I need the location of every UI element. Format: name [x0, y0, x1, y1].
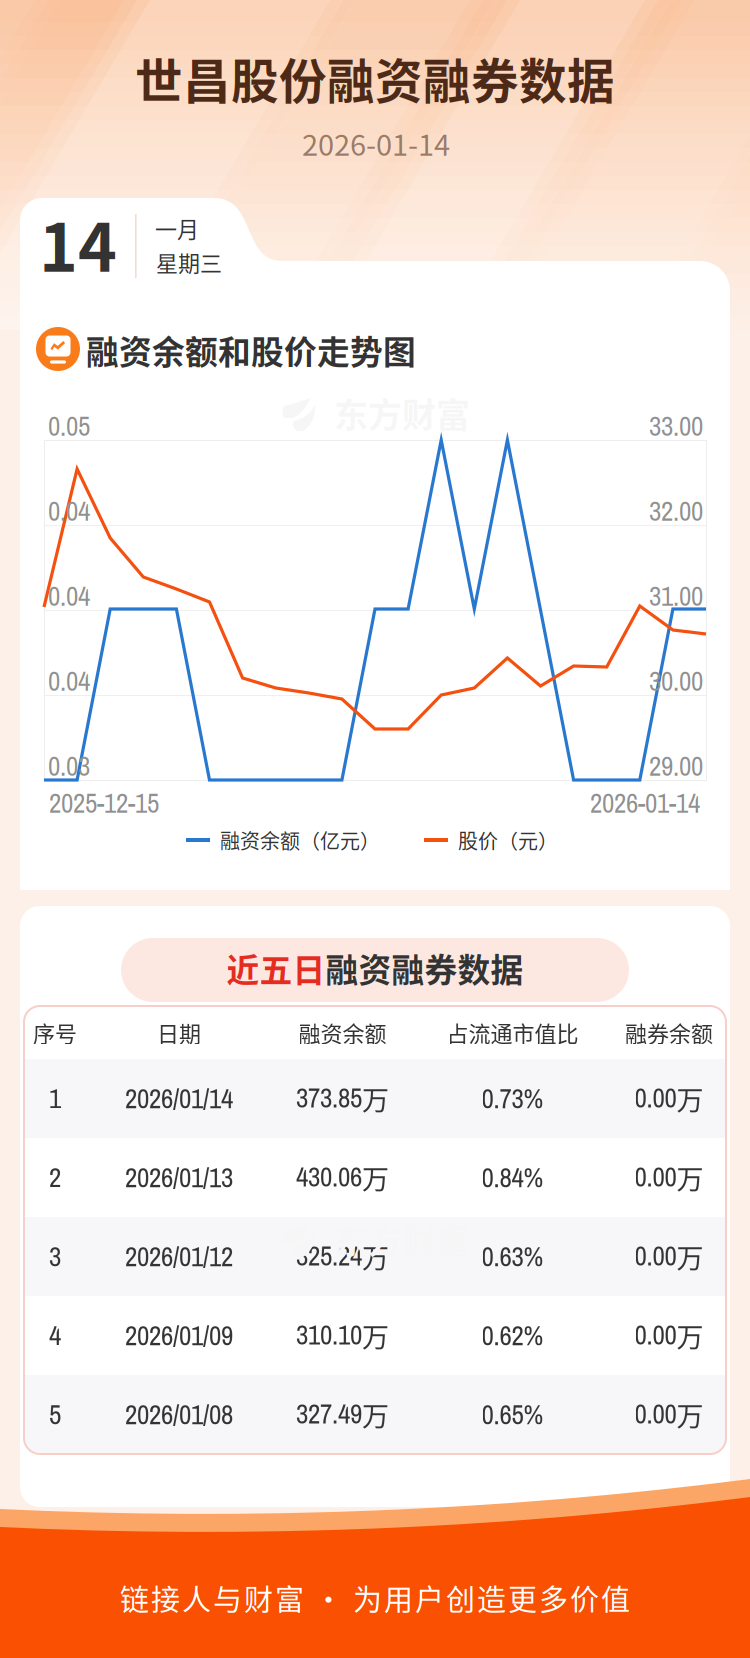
staticText: 近五日 [226, 944, 325, 992]
staticText: 融资余额 [298, 1017, 386, 1048]
staticText: 0.00万 [634, 1158, 703, 1197]
staticText: 2026/01/08 [125, 1396, 233, 1433]
staticText: 2 [49, 1159, 61, 1196]
staticText: 5 [49, 1396, 61, 1433]
staticText: 0.00万 [634, 1079, 703, 1118]
staticText: 股价（元） [458, 825, 558, 854]
staticText: 融资融券数据 [325, 944, 523, 992]
staticText: 2026-01-14 [302, 122, 450, 164]
staticText: 0.04 [48, 493, 90, 529]
staticText: 0.03 [48, 748, 90, 784]
staticText: 一月 [155, 212, 199, 244]
staticText: 0.84% [481, 1159, 543, 1196]
staticText: 序号 [33, 1017, 77, 1048]
staticText: 0.05 [48, 408, 90, 444]
staticText: 325.24万 [296, 1237, 389, 1276]
staticText: 日期 [157, 1017, 201, 1048]
staticText: 星期三 [156, 246, 222, 278]
staticText: 29.00 [649, 748, 703, 784]
staticText: 东方财富 [334, 388, 470, 438]
staticText: 2026/01/13 [125, 1159, 233, 1196]
staticText: 0.00万 [634, 1316, 703, 1355]
staticText: 占流通市值比 [446, 1017, 578, 1048]
staticText: 融资余额（亿元） [220, 825, 380, 854]
staticText: 3 [49, 1238, 61, 1275]
staticText: 融资余额和股价走势图 [86, 326, 416, 374]
staticText: 2026-01-14 [590, 785, 700, 821]
staticText: 430.06万 [296, 1158, 389, 1197]
staticText: 2026/01/14 [125, 1080, 233, 1117]
staticText: 33.00 [649, 408, 703, 444]
staticText: 2026/01/12 [125, 1238, 233, 1275]
staticText: 0.73% [481, 1080, 543, 1117]
staticText: 14 [39, 195, 117, 291]
staticText: 0.04 [48, 578, 90, 614]
staticText: 1 [49, 1080, 61, 1117]
staticText: 世昌股份融资融券数据 [135, 44, 615, 112]
staticText: 0.00万 [634, 1395, 703, 1434]
staticText: 0.04 [48, 663, 90, 699]
staticText: 2025-12-15 [49, 785, 159, 821]
staticText: 0.00万 [634, 1237, 703, 1276]
staticText: 327.49万 [296, 1395, 389, 1434]
staticText: 融券余额 [625, 1017, 713, 1048]
staticText: 310.10万 [296, 1316, 389, 1355]
staticText: 0.65% [481, 1396, 543, 1433]
staticText: 30.00 [649, 663, 703, 699]
staticText: 0.62% [481, 1317, 543, 1354]
staticText: 4 [49, 1317, 61, 1354]
staticText: 32.00 [649, 493, 703, 529]
staticText: 0.63% [481, 1238, 543, 1275]
staticText: 2026/01/09 [125, 1317, 233, 1354]
staticText: 31.00 [649, 578, 703, 614]
staticText: 373.85万 [296, 1079, 389, 1118]
staticText: 链接人与财富 · 为用户创造更多价值 [120, 1577, 630, 1619]
staticText: 东方财富 [334, 1214, 470, 1264]
